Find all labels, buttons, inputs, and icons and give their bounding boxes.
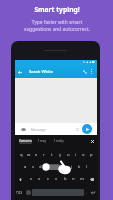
button[interactable]: ?123	[15, 185, 24, 200]
button[interactable]: n	[70, 176, 76, 182]
staticText: i	[75, 152, 77, 158]
button[interactable]: t	[49, 152, 55, 158]
staticText: p	[90, 152, 93, 158]
staticText: l	[86, 164, 88, 170]
button[interactable]: Emoji keyboard	[24, 185, 32, 200]
staticText: c	[47, 176, 50, 182]
button[interactable]: o	[80, 152, 86, 158]
button[interactable]: v	[53, 176, 59, 182]
staticText: I may	[38, 139, 47, 143]
button[interactable]: c	[45, 176, 51, 182]
staticText: v	[55, 176, 58, 182]
button[interactable]: z	[28, 176, 34, 182]
staticText: g	[55, 164, 58, 170]
staticText: a	[24, 164, 27, 170]
button[interactable]: x	[36, 176, 42, 182]
staticText: .	[86, 191, 87, 195]
staticText: k	[78, 164, 81, 170]
staticText: t	[51, 152, 53, 158]
button[interactable]: m	[79, 176, 85, 182]
button[interactable]: Space	[32, 185, 84, 200]
staticText: w	[27, 152, 31, 158]
button[interactable]: More options	[88, 68, 94, 74]
staticText: r	[43, 152, 45, 158]
button[interactable]: u	[65, 152, 71, 158]
staticText: z	[30, 176, 32, 182]
button[interactable]: l	[84, 164, 90, 170]
staticText: h	[63, 164, 66, 170]
staticText: Sarah White	[29, 69, 54, 75]
staticText: m	[80, 176, 84, 182]
button[interactable]: s	[30, 164, 36, 170]
button[interactable]: Send	[82, 124, 92, 134]
staticText: x	[38, 176, 41, 182]
button[interactable]: d	[37, 164, 43, 170]
button[interactable]: h	[61, 164, 67, 170]
staticText: j	[71, 164, 73, 170]
button[interactable]: Back	[16, 68, 24, 76]
button[interactable]: Keyboard settings	[90, 139, 95, 144]
button[interactable]: I really	[54, 139, 64, 143]
button[interactable]: f	[45, 164, 51, 170]
button[interactable]: .	[84, 185, 88, 200]
button[interactable]: I may	[38, 139, 47, 143]
staticText: Type faster with smart suggestions and a…	[24, 19, 90, 32]
staticText: n	[72, 176, 75, 182]
button[interactable]: b	[62, 176, 68, 182]
button[interactable]: i	[73, 152, 79, 158]
button[interactable]: Tomorrow	[19, 139, 32, 144]
staticText: o	[82, 152, 85, 158]
button[interactable]: e	[33, 152, 39, 158]
button[interactable]: a	[22, 164, 28, 170]
staticText: Smart typing!	[34, 5, 80, 14]
staticText: s	[32, 164, 35, 170]
staticText: ?123	[16, 191, 23, 195]
staticText: e	[35, 152, 38, 158]
button[interactable]: w	[26, 152, 32, 158]
staticText: q	[20, 152, 23, 158]
button[interactable]: Backspace	[87, 173, 96, 185]
staticText: f	[47, 164, 49, 170]
button[interactable]: q	[18, 152, 24, 158]
button[interactable]: y	[57, 152, 63, 158]
button[interactable]: j	[69, 164, 75, 170]
staticText: Tomorrow	[19, 139, 32, 144]
staticText: I really	[54, 139, 64, 143]
staticText: y	[59, 152, 62, 158]
button[interactable]: Emoji	[19, 125, 28, 134]
staticText: u	[67, 152, 70, 158]
button[interactable]: Enter	[88, 185, 97, 200]
staticText: d	[39, 164, 42, 170]
button[interactable]: p	[88, 152, 94, 158]
button[interactable]: g	[53, 164, 59, 170]
staticText: b	[64, 176, 67, 182]
button[interactable]: r	[41, 152, 47, 158]
staticText: Message	[31, 127, 46, 132]
button[interactable]: k	[76, 164, 82, 170]
button[interactable]: Shift	[16, 173, 25, 185]
button[interactable]: Attach	[73, 125, 82, 134]
button[interactable]: Call	[81, 68, 89, 76]
